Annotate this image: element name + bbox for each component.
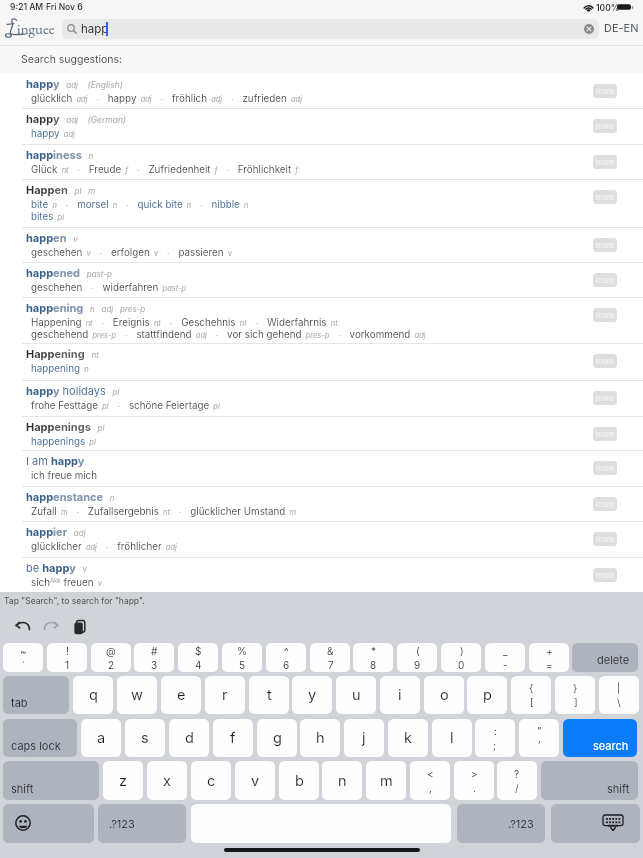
button[interactable]: } [555, 676, 595, 714]
staticText: happening n [31, 363, 89, 375]
button[interactable]: happier adj [0, 521, 643, 557]
button[interactable]: shift [3, 761, 99, 800]
button[interactable]: happenstance n [0, 486, 643, 521]
button[interactable]: t [249, 676, 289, 714]
button[interactable]: * [353, 643, 393, 672]
button[interactable]: more [593, 568, 617, 582]
button[interactable]: more [593, 391, 617, 405]
button[interactable]: ” [519, 719, 559, 757]
button[interactable]: more [593, 238, 617, 252]
staticText: 0 [458, 659, 465, 671]
button[interactable]: shift [541, 761, 638, 800]
button[interactable]: ( [397, 643, 437, 672]
button[interactable]: happy adj (English) [0, 73, 643, 108]
button[interactable]: more [593, 427, 617, 441]
button[interactable]: more [593, 155, 617, 169]
button[interactable]: # [134, 643, 174, 672]
button[interactable]: Happen pl m [0, 179, 643, 227]
button[interactable]: ^ [266, 643, 306, 672]
button[interactable]: d [169, 719, 209, 757]
button[interactable]: u [336, 676, 376, 714]
button[interactable]: o [424, 676, 464, 714]
button[interactable]: y [292, 676, 332, 714]
button[interactable]: > [454, 761, 494, 800]
button[interactable]: | [599, 676, 639, 714]
button[interactable]: more [593, 273, 617, 287]
button[interactable]: l [432, 719, 472, 757]
button[interactable]: s [125, 719, 165, 757]
button[interactable]: & [310, 643, 350, 672]
button[interactable]: f [213, 719, 253, 757]
button[interactable]: ) [441, 643, 481, 672]
button[interactable]: happy adj (German) [0, 108, 643, 144]
button[interactable]: + [529, 643, 569, 672]
button[interactable]: % [222, 643, 262, 672]
button[interactable]: e [161, 676, 201, 714]
button[interactable]: happening n adj pres-p [0, 297, 643, 343]
button[interactable]: _ [485, 643, 525, 672]
button[interactable]: I am happy [0, 450, 643, 486]
button[interactable]: w [117, 676, 157, 714]
button[interactable]: .?123 [98, 804, 186, 843]
button[interactable]: k [388, 719, 428, 757]
button[interactable]: Undo [13, 617, 33, 637]
staticText: $ [195, 645, 202, 657]
button[interactable]: : [475, 719, 515, 757]
button[interactable]: m [366, 761, 406, 800]
button[interactable]: Redo [41, 617, 61, 637]
button[interactable]: more [593, 354, 617, 368]
button[interactable]: Emoji [3, 804, 94, 843]
button[interactable]: p [467, 676, 507, 714]
button[interactable]: Clear text [584, 24, 594, 34]
button[interactable]: q [73, 676, 113, 714]
button[interactable]: a [81, 719, 121, 757]
button[interactable]: more [593, 84, 617, 98]
button[interactable]: n [322, 761, 362, 800]
button[interactable]: i [380, 676, 420, 714]
button[interactable]: Hide keyboard [551, 804, 640, 843]
button[interactable]: v [235, 761, 275, 800]
staticText: v [251, 772, 260, 790]
staticText: shift [607, 782, 630, 795]
button[interactable]: happ [62, 19, 599, 39]
button[interactable]: ? [497, 761, 537, 800]
button[interactable]: ! [47, 643, 87, 672]
button[interactable]: r [205, 676, 245, 714]
button[interactable]: happened past-p [0, 262, 643, 297]
button[interactable]: h [300, 719, 340, 757]
button[interactable]: z [103, 761, 143, 800]
button[interactable]: ~ [3, 643, 43, 672]
staticText: 3 [151, 659, 158, 671]
button[interactable]: more [593, 308, 617, 322]
button[interactable]: .?123 [457, 804, 545, 843]
button[interactable]: Happening nt [0, 343, 643, 380]
staticText: Happening nt · Ereignis nt · Geschehnis … [31, 317, 338, 329]
button[interactable]: @ [91, 643, 131, 672]
button[interactable]: happy holidays pl [0, 380, 643, 416]
button[interactable]: more [593, 497, 617, 511]
button[interactable]: happiness n [0, 144, 643, 179]
button[interactable]: caps lock [3, 719, 77, 757]
button[interactable]: j [344, 719, 384, 757]
button[interactable]: { [511, 676, 551, 714]
button[interactable]: search [563, 719, 637, 757]
button[interactable]: tab [3, 676, 69, 714]
button[interactable]: x [147, 761, 187, 800]
button[interactable]: more [593, 461, 617, 475]
button[interactable]: more [593, 190, 617, 204]
button[interactable]: Paste [70, 617, 90, 637]
button[interactable]: more [593, 119, 617, 133]
button[interactable]: c [191, 761, 231, 800]
staticText: l [450, 729, 454, 747]
button[interactable]: g [257, 719, 297, 757]
button[interactable]: Happenings pl [0, 416, 643, 450]
button[interactable]: happen v [0, 227, 643, 262]
button[interactable]: < [410, 761, 450, 800]
button[interactable]: $ [178, 643, 218, 672]
button[interactable]: DE-EN [602, 20, 641, 35]
button[interactable]: delete [572, 643, 638, 672]
button[interactable]: more [593, 532, 617, 546]
button[interactable]: b [279, 761, 319, 800]
button[interactable]: be happy v [0, 557, 643, 592]
